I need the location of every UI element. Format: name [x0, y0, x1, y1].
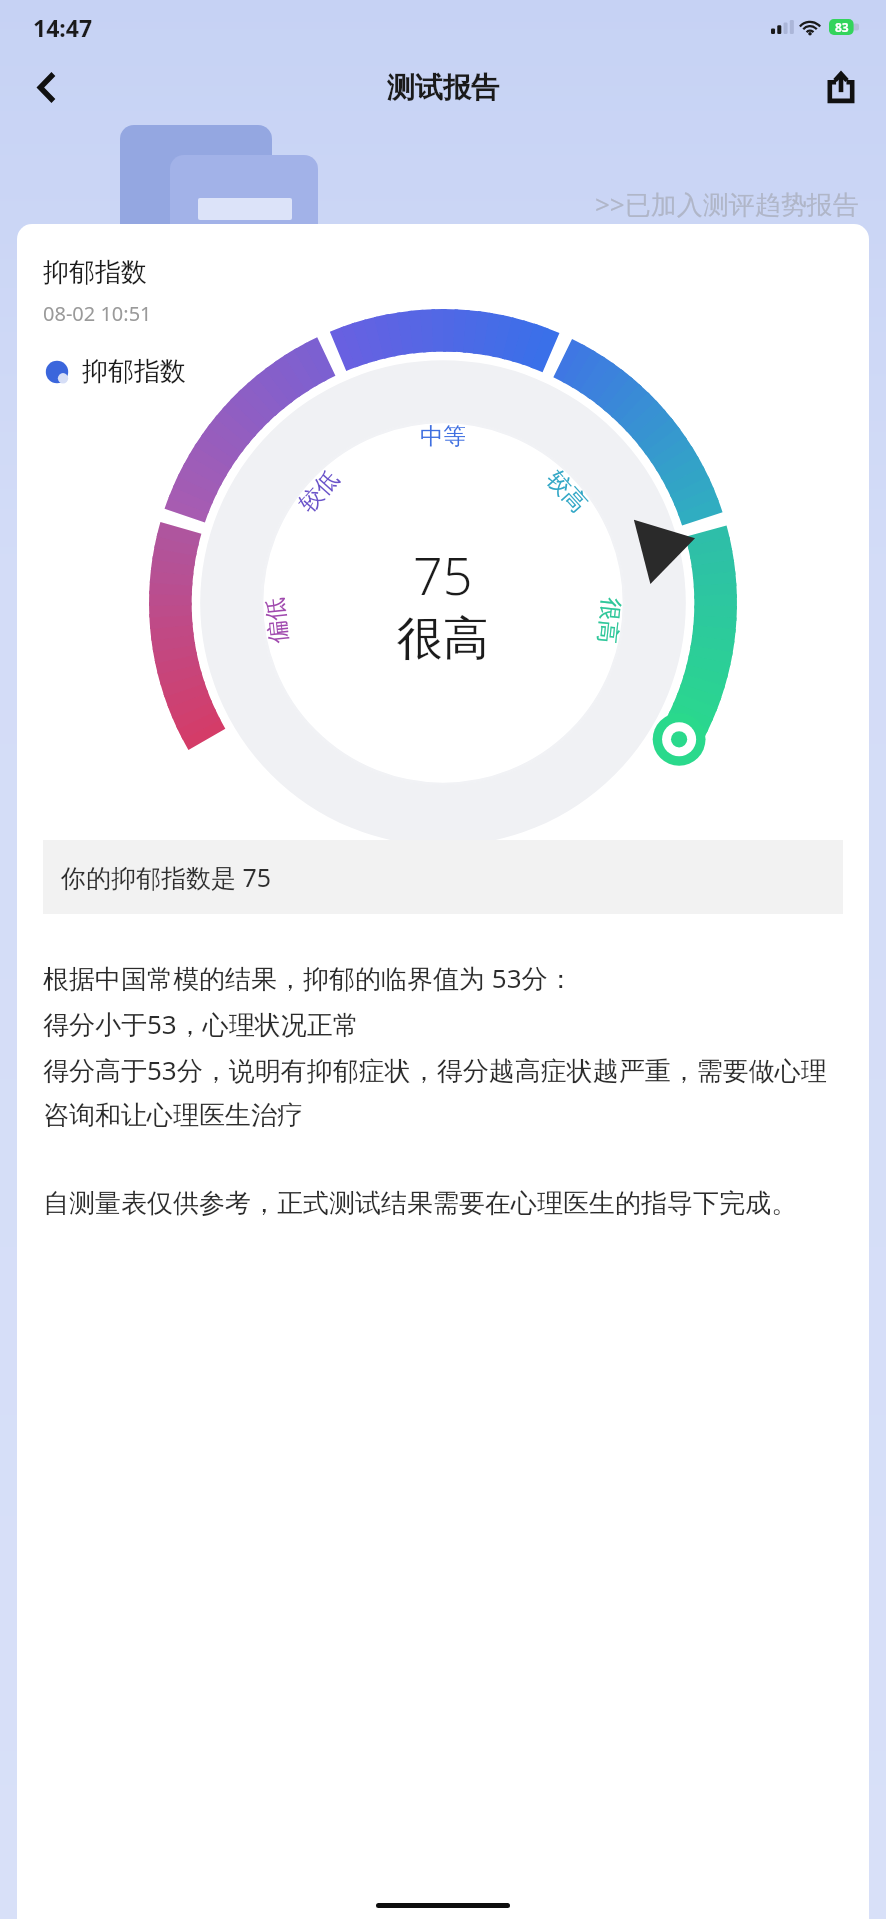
staticText: 75	[413, 539, 473, 610]
staticText: 很高	[592, 596, 626, 645]
staticText: 较低	[293, 465, 345, 518]
staticText: 中等	[420, 422, 466, 451]
staticText: 偏低	[260, 596, 294, 645]
staticText: 根据中国常模的结果，抑郁的临界值为 53分： 得分小于53，心理状况正常 得分高…	[43, 960, 843, 1220]
staticText: 很高	[397, 610, 489, 668]
staticText: >>已加入测评趋势报告	[595, 186, 859, 222]
staticText: 抑郁指数	[82, 355, 186, 388]
staticText: 83	[835, 19, 849, 35]
staticText: 你的抑郁指数是 75	[61, 860, 272, 894]
button[interactable]: Share	[818, 64, 864, 110]
staticText: 较高	[541, 465, 593, 518]
staticText: 抑郁指数	[43, 256, 147, 289]
staticText: 08-02 10:51	[43, 300, 152, 327]
staticText: 测试报告	[387, 70, 499, 105]
staticText: 14:47	[33, 12, 93, 43]
button[interactable]: Back	[24, 64, 70, 110]
